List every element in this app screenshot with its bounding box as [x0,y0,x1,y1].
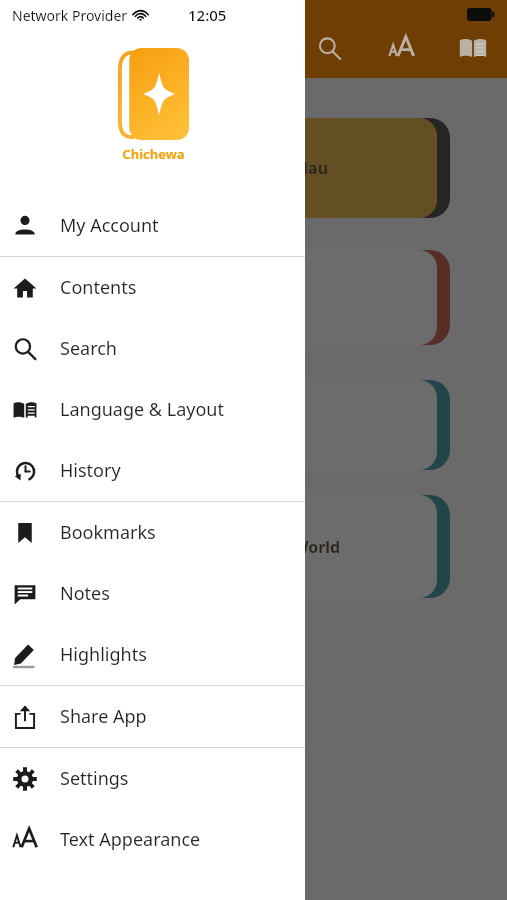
staticText: History [60,458,121,483]
staticText: Share App [60,704,147,729]
staticText: Mau [293,157,329,179]
button[interactable]: Mau [18,118,450,218]
staticText: My Account [60,213,159,238]
staticText: Notes [60,581,110,606]
staticText: World [293,536,341,558]
staticText: Highlights [60,642,147,667]
button[interactable]: World [18,495,450,598]
button[interactable] [18,380,450,470]
button[interactable]: Settings [0,748,305,809]
button[interactable]: Text Appearance [0,809,305,870]
button[interactable]: History [0,440,305,501]
button[interactable]: Language & Layout [0,379,305,440]
button[interactable]: Search [0,318,305,379]
staticText: 12:05 [188,5,227,25]
button[interactable]: Notes [0,563,305,624]
button[interactable]: Reader [450,25,496,71]
staticText: Bookmarks [60,520,156,545]
button[interactable]: Contents [0,257,305,318]
staticText: Chichewa [122,145,185,163]
staticText: Text Appearance [60,827,201,852]
button[interactable]: Text Appearance [378,25,424,71]
staticText: Language & Layout [60,397,224,422]
button[interactable] [18,250,450,345]
staticText: Contents [60,275,137,300]
staticText: Search [60,336,117,361]
button[interactable]: Bookmarks [0,502,305,563]
staticText: Settings [60,766,129,791]
button[interactable]: Search [306,25,352,71]
button[interactable]: Highlights [0,624,305,685]
button[interactable]: Share App [0,686,305,747]
button[interactable]: My Account [0,195,305,256]
staticText: Network Provider [12,6,128,25]
